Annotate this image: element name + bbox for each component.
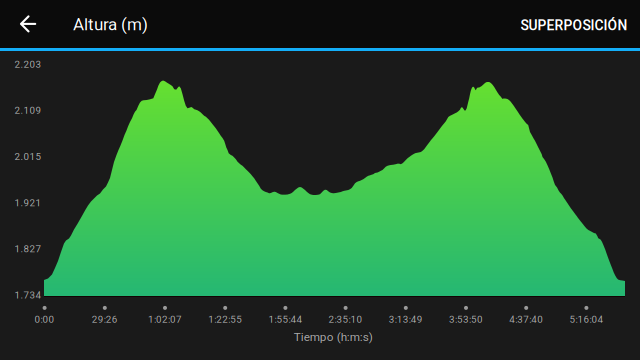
staticText: 1:22:55 <box>208 314 242 325</box>
staticText: 29:26 <box>92 314 118 325</box>
staticText: 3:53:50 <box>449 314 483 325</box>
staticText: 0:00 <box>35 314 55 325</box>
staticText: Altura (m) <box>73 14 148 34</box>
staticText: 1.827 <box>14 243 41 255</box>
staticText: 2.015 <box>14 151 41 162</box>
staticText: 1:55:44 <box>268 314 302 325</box>
staticText: Tiempo (h:m:s) <box>294 330 373 344</box>
staticText: 1.921 <box>14 197 41 209</box>
button[interactable]: Back <box>6 2 50 46</box>
staticText: 2.203 <box>14 59 41 70</box>
staticText: 2.109 <box>14 105 41 116</box>
staticText: 1.734 <box>14 289 41 301</box>
staticText: SUPERPOSICIÓN <box>521 17 628 34</box>
staticText: 4:37:40 <box>509 314 543 325</box>
button[interactable]: SUPERPOSICIÓN <box>494 2 628 49</box>
staticText: 2:35:10 <box>329 314 363 325</box>
staticText: 3:13:49 <box>389 314 423 325</box>
staticText: 1:02:07 <box>148 314 182 325</box>
staticText: 5:16:04 <box>569 314 603 325</box>
